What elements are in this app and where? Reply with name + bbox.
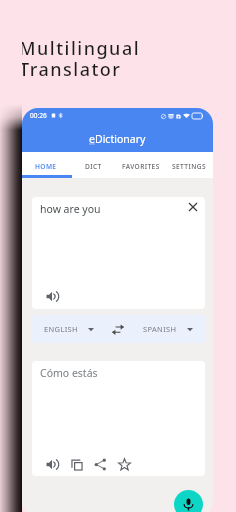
staticText: e xyxy=(89,132,95,146)
staticText: HOME xyxy=(35,162,57,171)
button[interactable]: ENGLISH xyxy=(32,315,106,343)
button[interactable]: Voice input xyxy=(174,490,203,512)
staticText: Multilingual Translator xyxy=(19,36,141,82)
button[interactable]: Add to favorites xyxy=(118,458,131,471)
button[interactable]: DICT xyxy=(69,152,117,178)
button[interactable]: HOME xyxy=(22,152,69,178)
button[interactable]: Copy xyxy=(70,458,83,471)
staticText: ENGLISH xyxy=(44,324,78,334)
staticText: how are you xyxy=(40,202,101,216)
button[interactable]: SPANISH xyxy=(130,315,205,343)
button[interactable]: Clear text xyxy=(187,201,198,212)
button[interactable]: Listen xyxy=(46,290,59,303)
staticText: DICT xyxy=(85,162,102,171)
staticText: SETTINGS xyxy=(172,162,206,171)
button[interactable]: Swap languages xyxy=(106,317,130,341)
staticText: SPANISH xyxy=(143,324,177,334)
button[interactable]: Share xyxy=(94,458,107,471)
staticText: FAVORITES xyxy=(122,162,160,171)
staticText: Dictionary xyxy=(95,132,146,146)
button[interactable]: FAVORITES xyxy=(117,152,165,178)
button[interactable]: SETTINGS xyxy=(165,152,213,178)
button[interactable]: Listen xyxy=(46,458,59,471)
staticText: 00:26 xyxy=(30,111,47,120)
staticText: Cómo estás xyxy=(40,366,98,380)
